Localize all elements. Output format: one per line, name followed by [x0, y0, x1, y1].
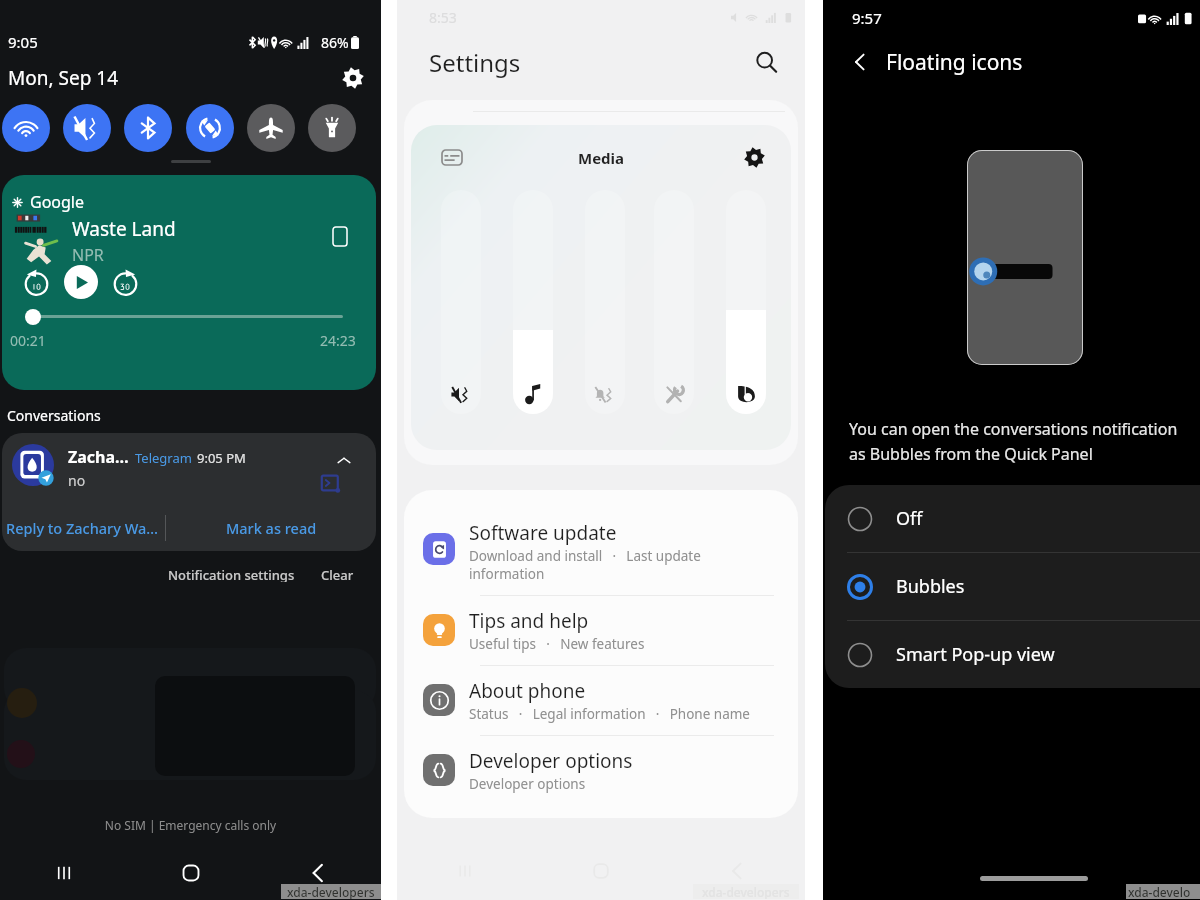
staticText: xda-developers — [287, 884, 375, 899]
staticText: Smart Pop-up view — [896, 642, 1055, 667]
button[interactable]: Software update — [404, 508, 798, 595]
staticText: 9:05 PM — [197, 449, 246, 467]
staticText: 8:53 — [429, 8, 457, 27]
button[interactable]: Auto rotate — [186, 104, 234, 152]
staticText: Developer options — [469, 775, 586, 793]
staticText: Status · Legal information · Phone name — [469, 705, 750, 723]
button[interactable]: Wi-Fi — [2, 104, 50, 152]
staticText: Settings — [429, 46, 521, 79]
button[interactable]: Airplane mode — [247, 104, 295, 152]
staticText: Developer options — [469, 748, 633, 774]
button[interactable]: Volume slider — [513, 190, 553, 414]
staticText: You can open the conversations notificat… — [849, 418, 1178, 464]
button[interactable]: Volume slider — [726, 190, 766, 414]
button[interactable]: Play — [64, 265, 98, 299]
staticText: 9:57 — [852, 8, 882, 28]
button[interactable]: Clear — [315, 561, 360, 587]
button[interactable]: Reply to Zachary Wa… — [2, 509, 165, 547]
staticText: 24:23 — [320, 331, 356, 350]
button[interactable]: Quick settings — [337, 62, 369, 94]
staticText: Clear — [321, 566, 354, 582]
staticText: Waste Land — [72, 216, 176, 242]
button[interactable]: Recents — [0, 849, 127, 897]
button[interactable]: Notification settings — [162, 561, 301, 587]
button[interactable]: Developer options — [404, 736, 798, 805]
button[interactable]: Mark as read — [166, 509, 376, 547]
staticText: No SIM | Emergency calls only — [0, 817, 381, 833]
staticText: Telegram — [135, 449, 192, 467]
staticText: Tips and help — [469, 608, 589, 634]
staticText: Mon, Sep 14 — [8, 65, 119, 91]
staticText: Mark as read — [226, 518, 317, 538]
staticText: Reply to Zachary Wa… — [6, 518, 159, 538]
staticText: 00:21 — [10, 331, 46, 350]
button[interactable]: Home — [127, 849, 254, 897]
staticText: xda-develo — [1128, 884, 1191, 899]
staticText: no — [68, 471, 86, 490]
button[interactable]: Output device — [327, 223, 353, 249]
button[interactable]: Rewind 10 seconds — [18, 264, 54, 300]
staticText: Bubbles — [896, 574, 965, 599]
button[interactable]: Search — [749, 45, 783, 79]
button[interactable]: Back — [254, 849, 381, 897]
staticText: 86% — [321, 33, 349, 52]
staticText: Conversations — [7, 406, 101, 425]
button[interactable]: Navigate up — [843, 45, 877, 79]
button[interactable]: Off — [825, 485, 1200, 552]
staticText: NPR — [72, 244, 104, 266]
button[interactable]: Expand notification — [333, 450, 355, 472]
button[interactable]: Forward 30 seconds — [107, 264, 143, 300]
staticText: Floating icons — [886, 48, 1023, 77]
staticText: Download and install · Last update infor… — [469, 547, 701, 583]
button[interactable]: Flashlight — [308, 104, 356, 152]
staticText: Software update — [469, 520, 617, 546]
button[interactable]: Back — [669, 848, 805, 894]
button[interactable]: Tips and help — [404, 596, 798, 665]
staticText: Off — [896, 506, 923, 531]
staticText: xda-developers — [702, 884, 790, 899]
button[interactable]: Google — [2, 175, 376, 390]
button[interactable]: Bubbles — [825, 553, 1200, 620]
staticText: Zacha… — [68, 446, 129, 468]
staticText: About phone — [469, 678, 586, 704]
button[interactable]: Smart Pop-up view — [825, 621, 1200, 688]
button[interactable]: Telegram icon — [12, 444, 54, 486]
staticText: Notification settings — [168, 566, 295, 582]
staticText: Media — [578, 148, 625, 168]
button[interactable]: Bluetooth — [124, 104, 172, 152]
button[interactable]: Pop-up view — [318, 471, 344, 497]
button[interactable]: Volume slider — [585, 190, 625, 414]
button[interactable]: Input type — [440, 145, 464, 169]
staticText: Google — [30, 191, 85, 213]
staticText: 9:05 — [8, 32, 38, 52]
button[interactable]: About phone — [404, 666, 798, 735]
button[interactable]: Volume slider — [654, 190, 694, 414]
button[interactable]: Volume slider — [441, 190, 481, 414]
button[interactable]: Sound mute — [63, 104, 111, 152]
staticText: Useful tips · New features — [469, 635, 645, 653]
button[interactable]: Sound settings — [742, 145, 766, 169]
